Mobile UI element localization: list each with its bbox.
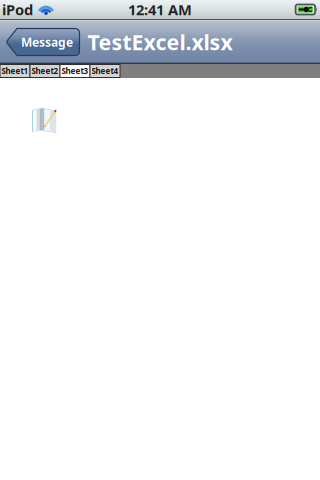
staticText: Sheet4 xyxy=(91,66,118,76)
button[interactable]: Sheet2 xyxy=(30,64,60,77)
staticText: 12:41 AM xyxy=(128,0,192,19)
staticText: Message xyxy=(21,34,73,50)
staticText: iPod xyxy=(2,0,33,19)
staticText: TestExcel.xlsx xyxy=(87,28,232,56)
staticText: Sheet2 xyxy=(31,66,58,76)
button[interactable]: Message xyxy=(6,28,80,56)
staticText: Sheet1 xyxy=(1,66,28,76)
button[interactable]: Sheet1 xyxy=(0,64,30,77)
staticText: Sheet3 xyxy=(61,66,88,76)
button[interactable]: Sheet4 xyxy=(90,64,120,77)
button[interactable]: Sheet3 xyxy=(60,64,90,77)
